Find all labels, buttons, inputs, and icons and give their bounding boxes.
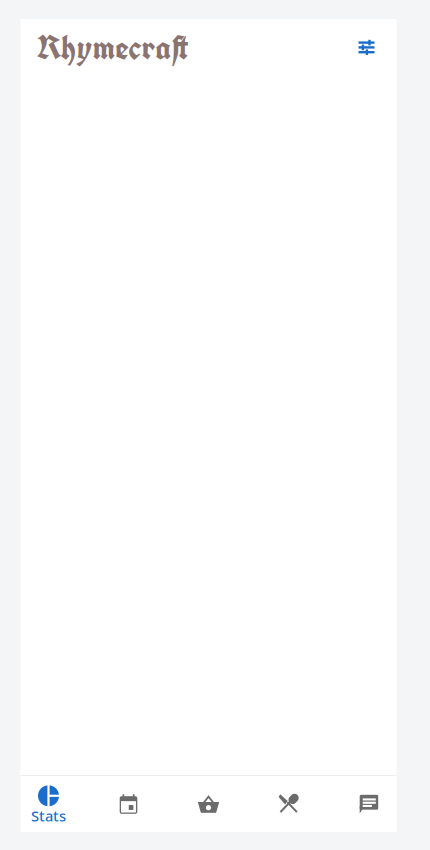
button[interactable]: Recipes <box>248 776 328 832</box>
button[interactable]: Settings <box>348 29 384 65</box>
staticText: Rhymecraft <box>36 24 188 70</box>
staticText: Stats <box>31 806 66 825</box>
button[interactable]: Messages <box>328 776 408 832</box>
button[interactable]: Stats <box>8 776 88 832</box>
button[interactable]: Calendar <box>88 776 168 832</box>
button[interactable]: Shopping list <box>168 776 248 832</box>
